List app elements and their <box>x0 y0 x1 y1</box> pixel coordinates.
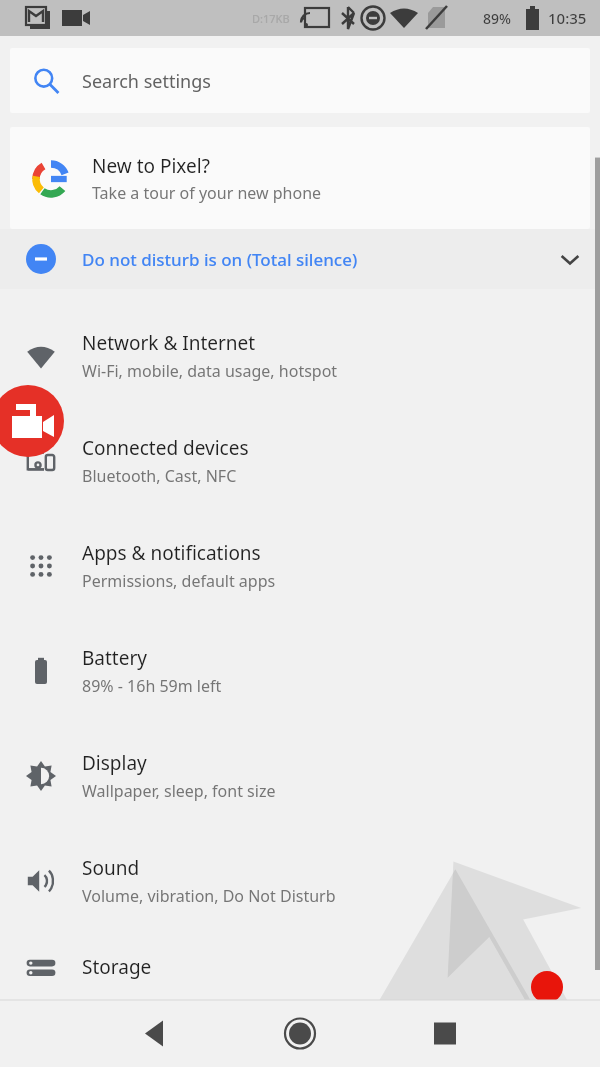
staticText: Bluetooth, Cast, NFC <box>82 465 237 487</box>
button[interactable]: Storage <box>0 933 600 1000</box>
staticText: 10:35 <box>548 8 587 28</box>
staticText: Wallpaper, sleep, font size <box>82 780 276 802</box>
staticText: Do not disturb is on (Total silence) <box>82 248 540 271</box>
button[interactable]: Do not disturb is on (Total silence) <box>0 229 600 289</box>
button[interactable]: Display <box>0 723 600 828</box>
staticText: Sound <box>82 855 140 881</box>
staticText: Wi-Fi, mobile, data usage, hotspot <box>82 360 338 382</box>
staticText: Apps & notifications <box>82 540 261 566</box>
button[interactable]: Expand <box>540 229 600 289</box>
button[interactable]: Battery <box>0 618 600 723</box>
button[interactable]: Search settings <box>10 48 590 113</box>
staticText: Battery <box>82 645 147 671</box>
staticText: D:17KB <box>252 11 290 26</box>
button[interactable]: Connected devices <box>0 408 600 513</box>
staticText: Display <box>82 750 147 776</box>
staticText: Volume, vibration, Do Not Disturb <box>82 885 336 907</box>
button[interactable]: Sound <box>0 828 600 933</box>
staticText: Permissions, default apps <box>82 570 276 592</box>
button[interactable]: Apps & notifications <box>0 513 600 618</box>
staticText: Connected devices <box>82 435 249 461</box>
staticText: 89% <box>483 9 511 28</box>
staticText: Network & Internet <box>82 330 256 356</box>
staticText: Search settings <box>82 69 211 94</box>
staticText: 89% - 16h 59m left <box>82 675 222 697</box>
other: Screen recorder <box>0 0 600 1067</box>
staticText: Take a tour of your new phone <box>92 182 322 204</box>
button[interactable]: Network & Internet <box>0 303 600 408</box>
staticText: New to Pixel? <box>92 153 210 179</box>
staticText: Storage <box>82 954 152 980</box>
button[interactable]: New to Pixel? <box>10 127 590 229</box>
